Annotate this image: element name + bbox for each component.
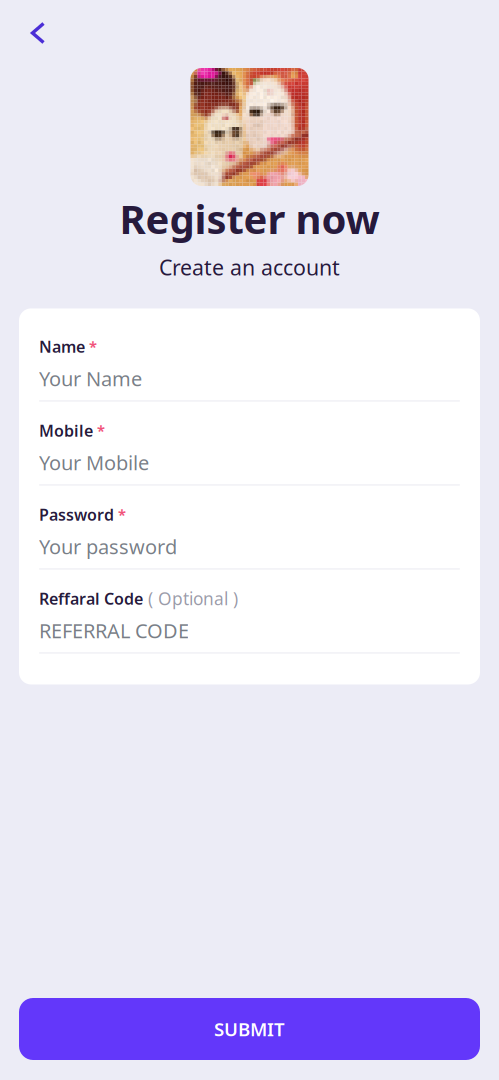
- staticText: *: [93, 421, 105, 440]
- staticText: Create an account: [159, 253, 340, 281]
- staticText: Password: [39, 504, 114, 525]
- staticText: Your Name: [39, 365, 142, 392]
- staticText: Mobile: [39, 420, 93, 441]
- staticText: Your password: [39, 533, 177, 560]
- staticText: *: [114, 505, 126, 524]
- staticText: Your Mobile: [39, 449, 149, 476]
- staticText: ( Optional ): [143, 587, 238, 610]
- staticText: REFERRAL CODE: [39, 617, 189, 644]
- staticText: Reffaral Code: [39, 588, 143, 609]
- staticText: Name: [39, 336, 85, 357]
- button[interactable]: SUBMIT: [19, 998, 480, 1060]
- staticText: *: [85, 337, 97, 356]
- button[interactable]: Back: [16, 11, 60, 55]
- staticText: SUBMIT: [214, 1017, 285, 1041]
- staticText: Register now: [119, 192, 379, 245]
